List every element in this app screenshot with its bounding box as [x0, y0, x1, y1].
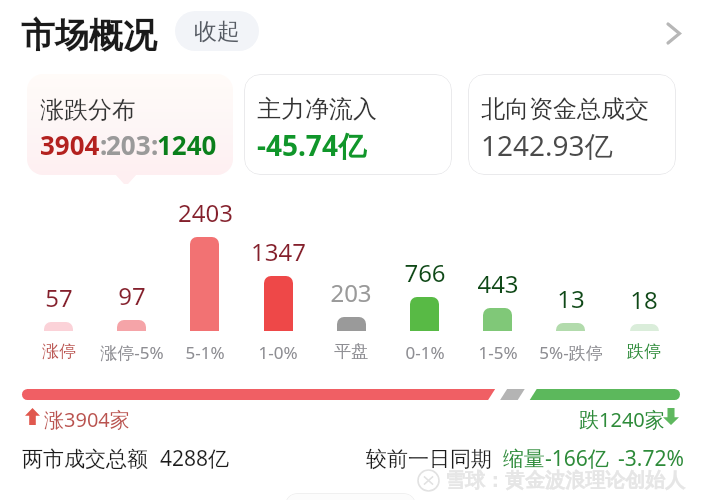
staticText: 两市成交总额: [22, 446, 148, 472]
staticText: 跌停: [627, 341, 661, 362]
staticText: 北向资金总成交: [481, 94, 649, 124]
staticText: 缩量-166亿: [503, 444, 609, 473]
staticText: 涨3904家: [44, 406, 130, 433]
staticText: 4288亿: [160, 444, 230, 473]
staticText: 主力净流入: [257, 94, 377, 124]
staticText: 较前一日同期: [366, 446, 492, 472]
staticText: 涨跌分布: [40, 95, 136, 125]
staticText: -3.72%: [618, 444, 684, 473]
staticText: :: [151, 127, 157, 162]
staticText: 3904: [40, 127, 100, 162]
staticText: 跌1240家: [579, 406, 665, 433]
staticText: 涨停: [42, 341, 76, 362]
button[interactable]: More: [656, 13, 696, 53]
button[interactable]: 北向资金总成交: [468, 74, 676, 175]
staticText: 2403: [178, 196, 233, 229]
staticText: 5%-跌停: [539, 341, 603, 364]
staticText: 0-1%: [405, 341, 445, 364]
button[interactable]: 主力净流入: [244, 74, 452, 175]
staticText: 雪球：黄金波浪理论创始人: [445, 468, 685, 493]
staticText: 1347: [251, 235, 306, 268]
staticText: 1-5%: [478, 341, 518, 364]
staticText: -45.74亿: [257, 126, 366, 164]
staticText: 443: [477, 267, 519, 300]
staticText: 13: [557, 282, 585, 315]
staticText: 57: [45, 281, 73, 314]
staticText: 18: [630, 283, 658, 316]
staticText: 1242.93亿: [481, 126, 613, 164]
staticText: 涨停-5%: [100, 341, 164, 364]
staticText: 市场概况: [21, 14, 157, 57]
staticText: 平盘: [334, 341, 368, 362]
button[interactable]: 涨跌分布: [27, 74, 233, 175]
staticText: 1-0%: [258, 341, 298, 364]
staticText: 97: [118, 279, 146, 312]
staticText: 5-1%: [185, 341, 225, 364]
staticText: 收起: [194, 17, 240, 46]
staticText: :: [100, 127, 106, 162]
button[interactable]: 收起: [175, 11, 259, 51]
staticText: 766: [404, 256, 446, 289]
staticText: 1240: [157, 127, 217, 162]
staticText: 203: [330, 276, 372, 309]
staticText: 203: [106, 127, 151, 162]
